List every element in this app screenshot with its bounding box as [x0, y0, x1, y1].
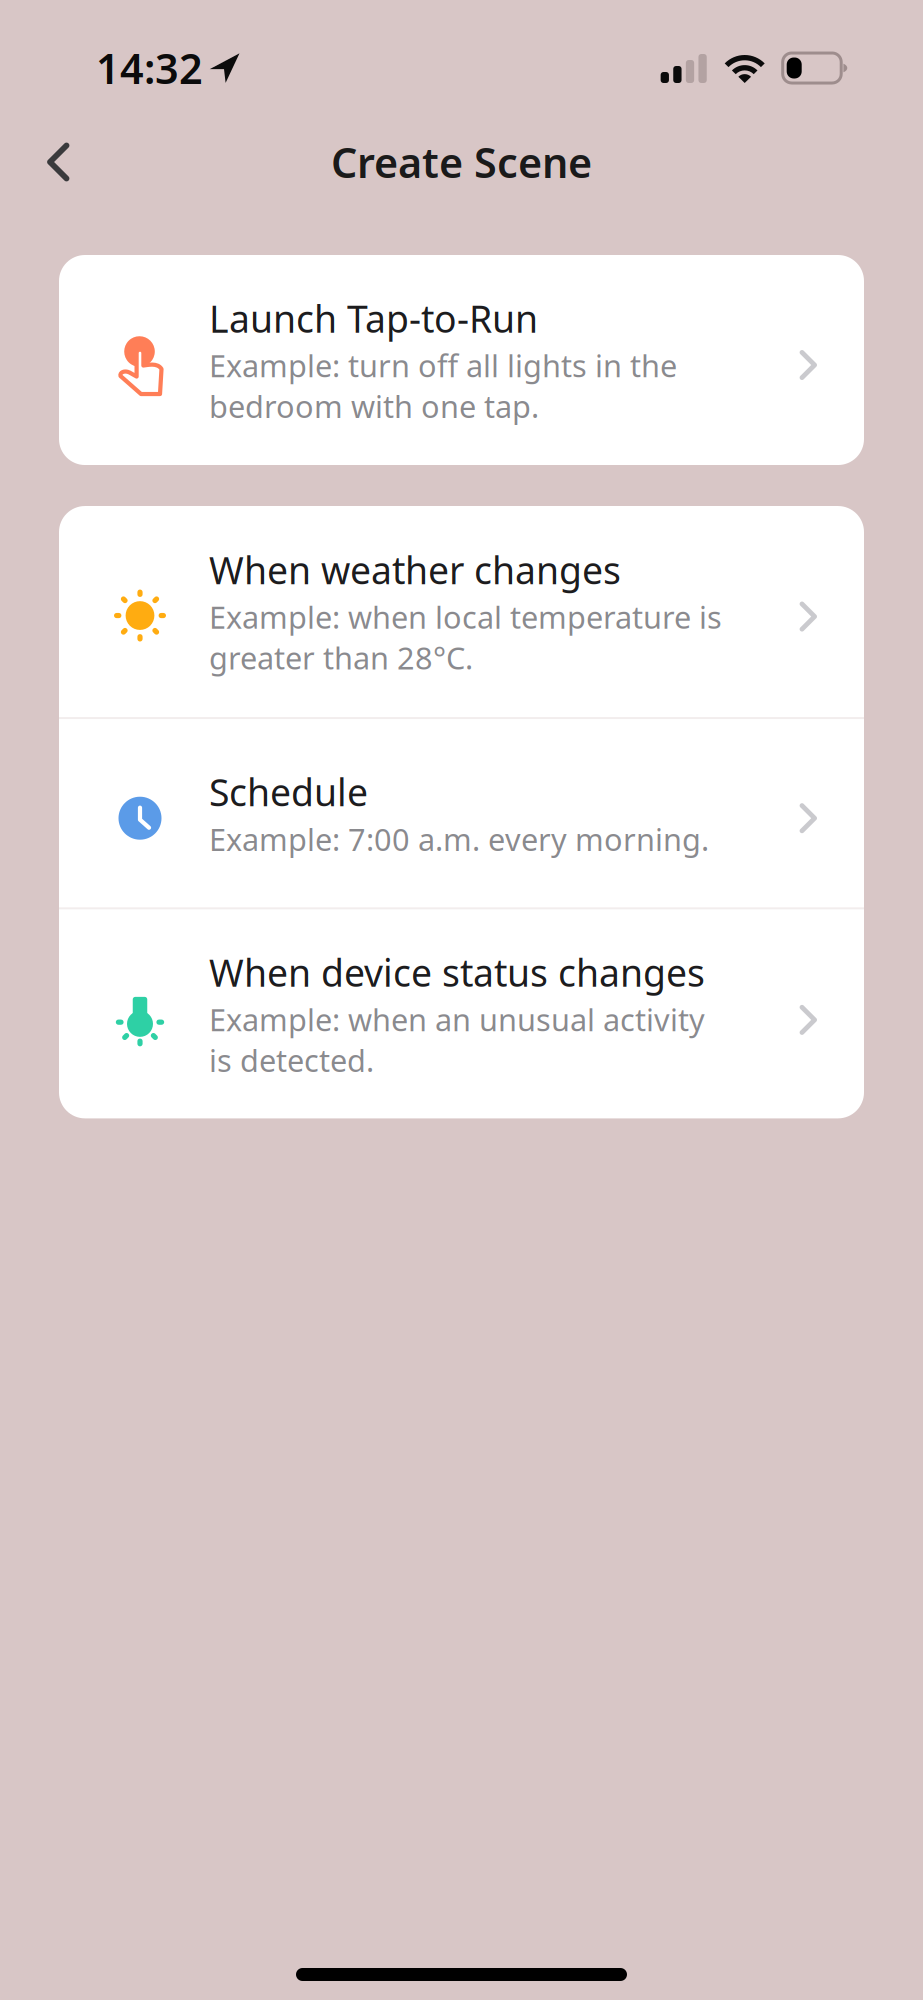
staticText: 14:32: [96, 41, 203, 95]
button[interactable]: When device status changes: [59, 909, 864, 1118]
staticText: Example: when an unusual activity is det…: [209, 999, 705, 1080]
button[interactable]: Schedule: [59, 719, 864, 907]
button[interactable]: When weather changes: [59, 506, 864, 717]
staticText: Create Scene: [331, 135, 592, 189]
staticText: When weather changes: [209, 545, 621, 595]
button[interactable]: Launch Tap-to-Run: [59, 255, 864, 465]
staticText: Example: turn off all lights in the bedr…: [209, 345, 677, 426]
button[interactable]: Back: [0, 120, 99, 203]
staticText: Schedule: [209, 767, 368, 817]
staticText: When device status changes: [209, 947, 705, 997]
staticText: Example: when local temperature is great…: [209, 597, 722, 678]
staticText: Example: 7:00 a.m. every morning.: [209, 819, 709, 859]
staticText: Launch Tap-to-Run: [209, 293, 538, 343]
